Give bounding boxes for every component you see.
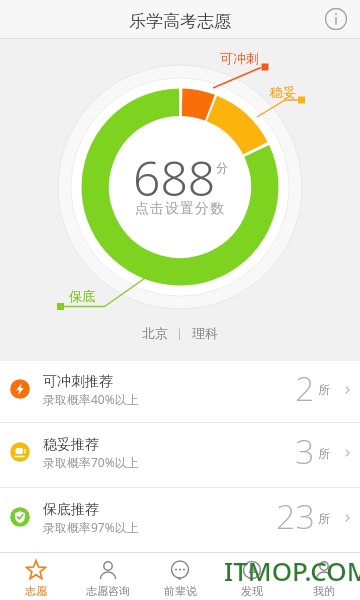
button[interactable]: 可冲刺推荐 (0, 361, 360, 422)
button[interactable] (325, 8, 347, 30)
button[interactable]: 688 (80, 145, 280, 205)
button[interactable]: 我的 (288, 553, 360, 600)
button[interactable]: 志愿咨询 (72, 553, 144, 600)
staticText: 23 (276, 493, 315, 539)
staticText: 稳妥推荐 (43, 436, 99, 454)
staticText: 录取概率40%以上 (43, 391, 139, 407)
staticText: 录取概率97%以上 (43, 519, 139, 535)
staticText: 保底 (69, 288, 95, 304)
button[interactable]: 保底推荐 (0, 488, 360, 552)
button[interactable]: 志愿 (0, 553, 72, 600)
staticText: 发现 (241, 584, 263, 598)
button[interactable]: 前辈说 (144, 553, 216, 600)
staticText: 2 (295, 365, 315, 411)
staticText: 前辈说 (164, 584, 197, 598)
staticText: ITMOP.COM (224, 553, 360, 588)
staticText: 北京 (142, 325, 168, 341)
staticText: 我的 (313, 584, 335, 598)
staticText: 所 (318, 382, 330, 397)
staticText: 所 (318, 446, 330, 461)
staticText: 可冲刺推荐 (43, 373, 113, 391)
staticText: 3 (295, 428, 315, 474)
staticText: 志愿 (25, 584, 47, 598)
staticText: 乐学高考志愿 (129, 11, 231, 32)
button[interactable]: 稳妥推荐 (0, 423, 360, 487)
staticText: 保底推荐 (43, 501, 99, 519)
staticText: 理科 (192, 325, 218, 341)
staticText: 录取概率70%以上 (43, 454, 139, 470)
button[interactable]: 发现 (216, 553, 288, 600)
staticText: 所 (318, 511, 330, 526)
staticText: 点击设置分数 (0, 200, 360, 218)
staticText: 志愿咨询 (86, 584, 130, 598)
staticText: 688 (133, 145, 216, 205)
staticText: 稳妥 (270, 84, 296, 100)
staticText: 可冲刺 (220, 50, 259, 66)
staticText: 分 (216, 160, 228, 175)
